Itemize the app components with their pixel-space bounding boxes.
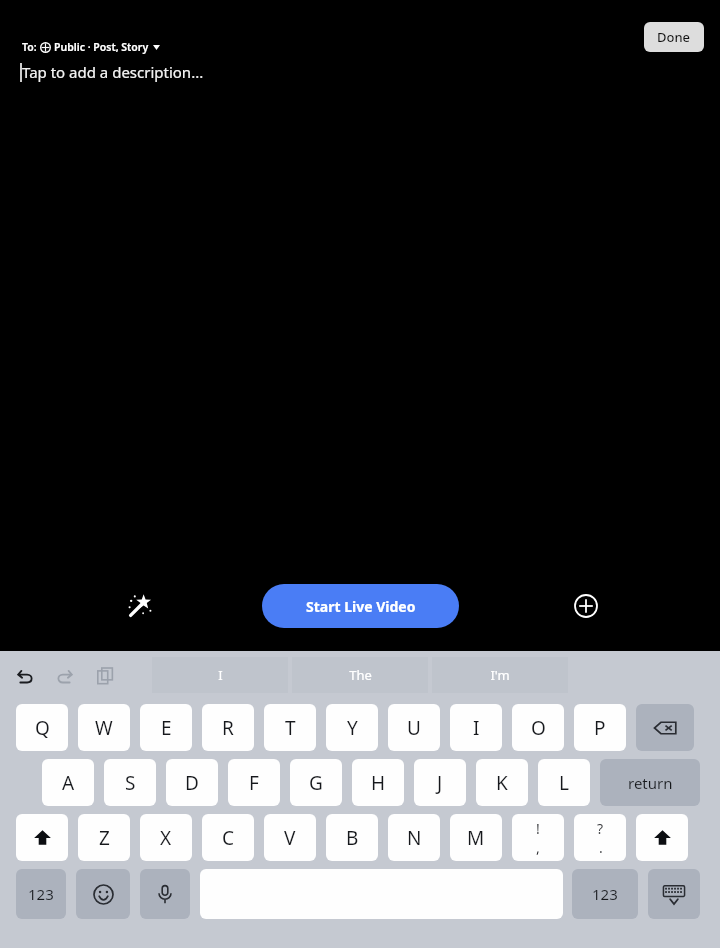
button[interactable]: X: [140, 814, 192, 861]
button[interactable]: Y: [326, 704, 378, 751]
staticText: W: [95, 715, 113, 741]
staticText: ?: [597, 819, 604, 838]
button[interactable]: B: [326, 814, 378, 861]
button[interactable]: Effects: [118, 584, 162, 628]
button[interactable]: Start Live Video: [262, 584, 459, 628]
button[interactable]: Shift: [636, 814, 688, 861]
staticText: Y: [347, 715, 358, 741]
button[interactable]: Add: [564, 584, 608, 628]
button[interactable]: K: [476, 759, 528, 806]
staticText: !: [536, 819, 540, 838]
button[interactable]: F: [228, 759, 280, 806]
button[interactable]: I: [450, 704, 502, 751]
staticText: J: [437, 770, 443, 796]
button[interactable]: U: [388, 704, 440, 751]
button[interactable]: Q: [16, 704, 68, 751]
staticText: Q: [35, 715, 50, 741]
button[interactable]: L: [538, 759, 590, 806]
button[interactable]: Done: [644, 22, 704, 52]
button[interactable]: R: [202, 704, 254, 751]
button[interactable]: D: [166, 759, 218, 806]
staticText: S: [125, 770, 136, 796]
staticText: Public · Post, Story: [54, 40, 149, 54]
staticText: V: [284, 825, 296, 851]
button[interactable]: 123: [16, 869, 66, 919]
staticText: U: [407, 715, 421, 741]
staticText: T: [285, 715, 296, 741]
staticText: To:: [22, 40, 40, 54]
staticText: 123: [592, 884, 618, 904]
button[interactable]: O: [512, 704, 564, 751]
staticText: K: [496, 770, 508, 796]
button[interactable]: A: [42, 759, 94, 806]
button[interactable]: Backspace: [636, 704, 694, 751]
button[interactable]: Emoji: [76, 869, 130, 919]
button[interactable]: W: [78, 704, 130, 751]
button[interactable]: P: [574, 704, 626, 751]
staticText: I: [473, 715, 480, 741]
button[interactable]: J: [414, 759, 466, 806]
staticText: P: [594, 715, 606, 741]
staticText: 123: [28, 884, 54, 904]
staticText: O: [531, 715, 546, 741]
staticText: I: [218, 666, 223, 684]
staticText: L: [559, 770, 569, 796]
button[interactable]: Z: [78, 814, 130, 861]
button[interactable]: 123: [572, 869, 638, 919]
button[interactable]: T: [264, 704, 316, 751]
staticText: Done: [657, 28, 691, 46]
staticText: The: [349, 666, 372, 684]
button[interactable]: Shift: [16, 814, 68, 861]
button[interactable]: Voice input: [140, 869, 190, 919]
button[interactable]: S: [104, 759, 156, 806]
button[interactable]: !: [512, 814, 564, 861]
staticText: F: [249, 770, 259, 796]
button[interactable]: Redo: [48, 659, 82, 693]
staticText: Z: [99, 825, 110, 851]
button[interactable]: Hide keyboard: [648, 869, 700, 919]
button[interactable]: N: [388, 814, 440, 861]
button[interactable]: C: [202, 814, 254, 861]
button[interactable]: I'm: [432, 657, 568, 693]
staticText: return: [628, 773, 673, 793]
button[interactable]: H: [352, 759, 404, 806]
button[interactable]: G: [290, 759, 342, 806]
staticText: R: [222, 715, 234, 741]
staticText: G: [309, 770, 323, 796]
button[interactable]: Undo: [8, 659, 42, 693]
button[interactable]: ?: [574, 814, 626, 861]
staticText: Start Live Video: [306, 597, 416, 616]
button[interactable]: Tap to add a description...: [0, 62, 720, 88]
staticText: M: [467, 825, 485, 851]
staticText: H: [371, 770, 386, 796]
button[interactable]: E: [140, 704, 192, 751]
button[interactable]: return: [600, 759, 700, 806]
button[interactable]: V: [264, 814, 316, 861]
button[interactable]: Paste: [88, 659, 122, 693]
staticText: D: [185, 770, 199, 796]
staticText: A: [62, 770, 75, 796]
staticText: I'm: [490, 666, 510, 684]
button[interactable]: M: [450, 814, 502, 861]
button[interactable]: The: [292, 657, 428, 693]
staticText: Tap to add a description...: [22, 62, 204, 82]
staticText: E: [161, 715, 172, 741]
staticText: B: [346, 825, 359, 851]
staticText: N: [407, 825, 422, 851]
staticText: C: [222, 825, 235, 851]
button[interactable]: I: [152, 657, 288, 693]
staticText: X: [160, 825, 172, 851]
staticText: .: [599, 838, 603, 857]
staticText: ,: [536, 838, 540, 857]
button[interactable]: To:: [20, 38, 162, 56]
